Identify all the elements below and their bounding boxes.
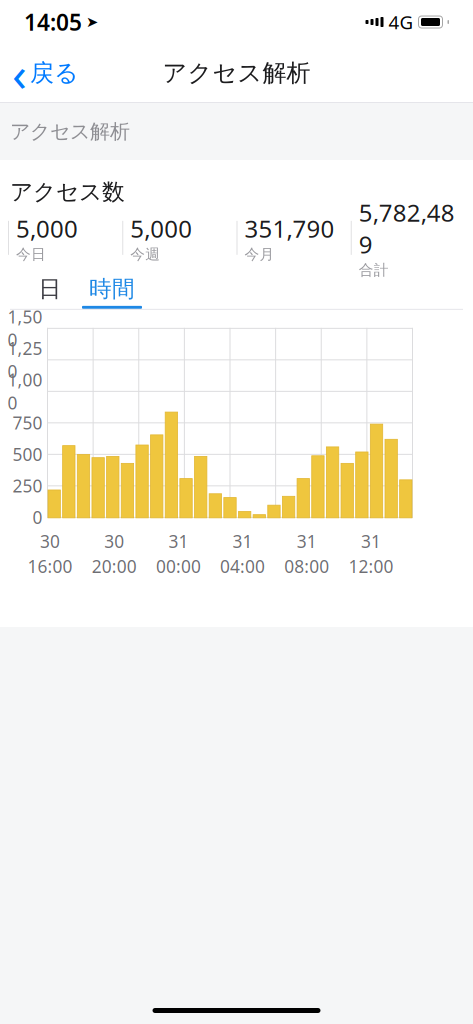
staticText: 00:00 (156, 555, 201, 578)
staticText: アクセス解析 (10, 119, 130, 144)
staticText: 30 (104, 530, 124, 553)
staticText: 14:05 (24, 7, 82, 37)
staticText: 04:00 (220, 555, 265, 578)
staticText: 31 (297, 530, 317, 553)
staticText: 31 (168, 530, 188, 553)
staticText: 今月 (244, 245, 274, 263)
staticText: 今日 (16, 245, 46, 263)
staticText: 時間 (89, 275, 135, 303)
staticText: 合計 (359, 261, 389, 279)
button[interactable]: 時間 (80, 272, 144, 309)
staticText: 500 (12, 443, 42, 466)
staticText: 戻る (30, 58, 79, 88)
staticText: 31 (361, 530, 381, 553)
staticText: 0 (32, 506, 42, 529)
staticText: 20:00 (92, 555, 137, 578)
staticText: ➤ (86, 14, 98, 30)
staticText: アクセス数 (10, 178, 125, 206)
staticText: 日 (38, 275, 61, 303)
staticText: 1,500 (7, 305, 42, 351)
staticText: ‹ (12, 41, 27, 105)
staticText: 750 (12, 411, 42, 434)
staticText: 31 (233, 530, 253, 553)
staticText: 今週 (130, 245, 160, 263)
staticText: 5,782,489 (359, 196, 455, 260)
staticText: 08:00 (284, 555, 329, 578)
staticText: 1,000 (7, 368, 42, 414)
staticText: 30 (40, 530, 60, 553)
staticText: 4G (388, 10, 413, 34)
staticText: 1,250 (7, 337, 42, 383)
staticText: アクセス解析 (162, 58, 310, 88)
staticText: 16:00 (28, 555, 73, 578)
staticText: 5,000 (16, 212, 78, 244)
button[interactable]: 日 (20, 272, 80, 309)
button[interactable]: ‹ (0, 51, 91, 95)
staticText: 250 (12, 474, 42, 497)
staticText: 351,790 (244, 212, 334, 244)
staticText: 12:00 (348, 555, 393, 578)
staticText: 5,000 (130, 212, 192, 244)
